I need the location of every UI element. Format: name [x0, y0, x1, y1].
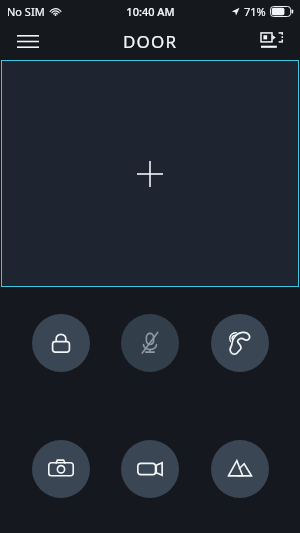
button[interactable]: Add camera	[1, 60, 299, 287]
button[interactable]: Take photo	[32, 440, 90, 498]
button[interactable]: Switch camera	[252, 22, 292, 60]
button[interactable]: Gallery	[211, 440, 269, 498]
staticText: 10:40 AM	[126, 4, 175, 19]
button[interactable]: Microphone muted	[121, 314, 179, 372]
button[interactable]: Record video	[121, 440, 179, 498]
button[interactable]: Call	[211, 314, 269, 372]
button[interactable]: Lock door	[32, 314, 90, 372]
button[interactable]: Menu	[8, 22, 48, 60]
staticText: DOOR	[123, 30, 178, 53]
staticText: No SIM	[7, 4, 45, 19]
staticText: 71%	[244, 4, 266, 19]
